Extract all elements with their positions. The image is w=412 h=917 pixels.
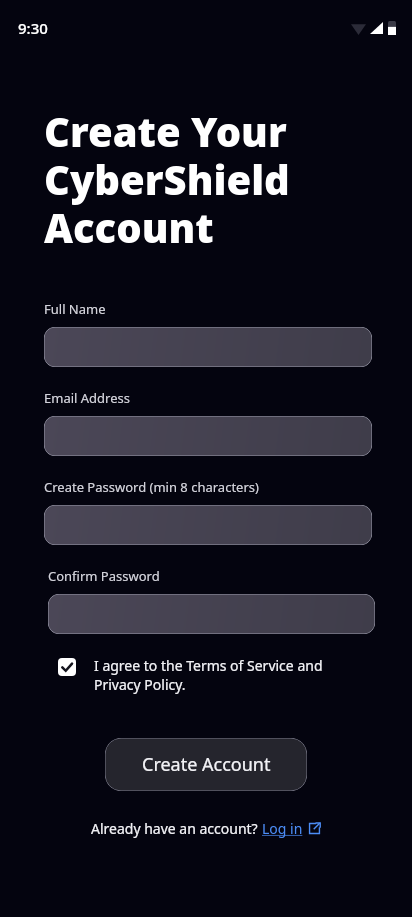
button[interactable]: Create Account xyxy=(105,738,307,791)
staticText: Full Name xyxy=(44,300,106,318)
button[interactable] xyxy=(44,416,372,456)
staticText: Already have an account? xyxy=(91,819,262,838)
staticText: Create Password (min 8 characters) xyxy=(44,478,259,496)
staticText: 9:30 xyxy=(18,18,48,38)
staticText: Log in xyxy=(262,819,303,838)
button[interactable]: Log in xyxy=(262,819,321,838)
other: Opens in new window xyxy=(308,822,321,835)
staticText: Create Your CyberShield Account xyxy=(44,104,352,254)
staticText: Create Account xyxy=(142,752,271,777)
staticText: I agree to the Terms of Service and Priv… xyxy=(94,656,366,694)
button[interactable] xyxy=(44,327,372,367)
staticText: Email Address xyxy=(44,389,130,407)
staticText: Confirm Password xyxy=(48,567,160,585)
button[interactable] xyxy=(48,594,375,634)
button[interactable] xyxy=(44,505,372,545)
button[interactable]: I agree to the Terms of Service and Priv… xyxy=(58,656,366,694)
